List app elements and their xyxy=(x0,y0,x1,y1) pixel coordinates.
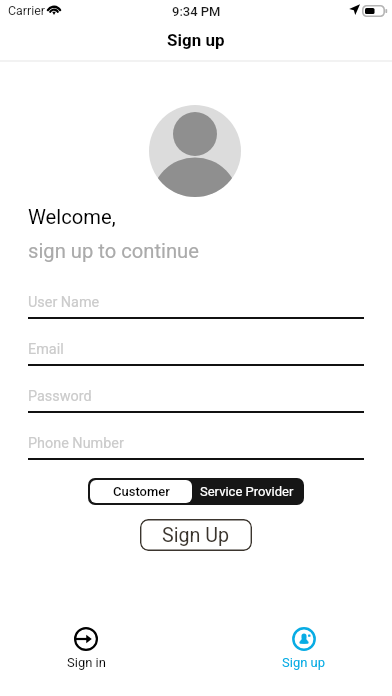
staticText: 9:34 PM xyxy=(172,4,221,19)
button[interactable]: Service Provider xyxy=(192,480,302,503)
staticText: Phone Number xyxy=(28,435,124,452)
staticText: Sign Up xyxy=(162,524,230,547)
button[interactable]: User Name xyxy=(28,293,364,318)
staticText: Customer xyxy=(113,484,170,499)
button[interactable]: Password xyxy=(28,387,364,412)
staticText: Sign in xyxy=(67,655,106,670)
staticText: User Name xyxy=(28,294,100,311)
staticText: Email xyxy=(28,341,64,358)
staticText: Sign up xyxy=(282,655,326,670)
button[interactable]: Sign up xyxy=(266,627,342,670)
staticText: Sign up xyxy=(167,30,225,50)
button[interactable]: Email xyxy=(28,340,364,365)
staticText: Service Provider xyxy=(200,484,294,499)
button[interactable]: Customer xyxy=(90,480,192,503)
staticText: sign up to continue xyxy=(28,239,199,263)
staticText: Welcome, xyxy=(28,205,116,229)
button[interactable]: Sign in xyxy=(48,627,124,670)
button[interactable]: Sign Up xyxy=(140,519,252,551)
staticText: Carrier xyxy=(8,3,45,18)
button[interactable]: Phone Number xyxy=(28,434,364,459)
staticText: Password xyxy=(28,388,92,405)
